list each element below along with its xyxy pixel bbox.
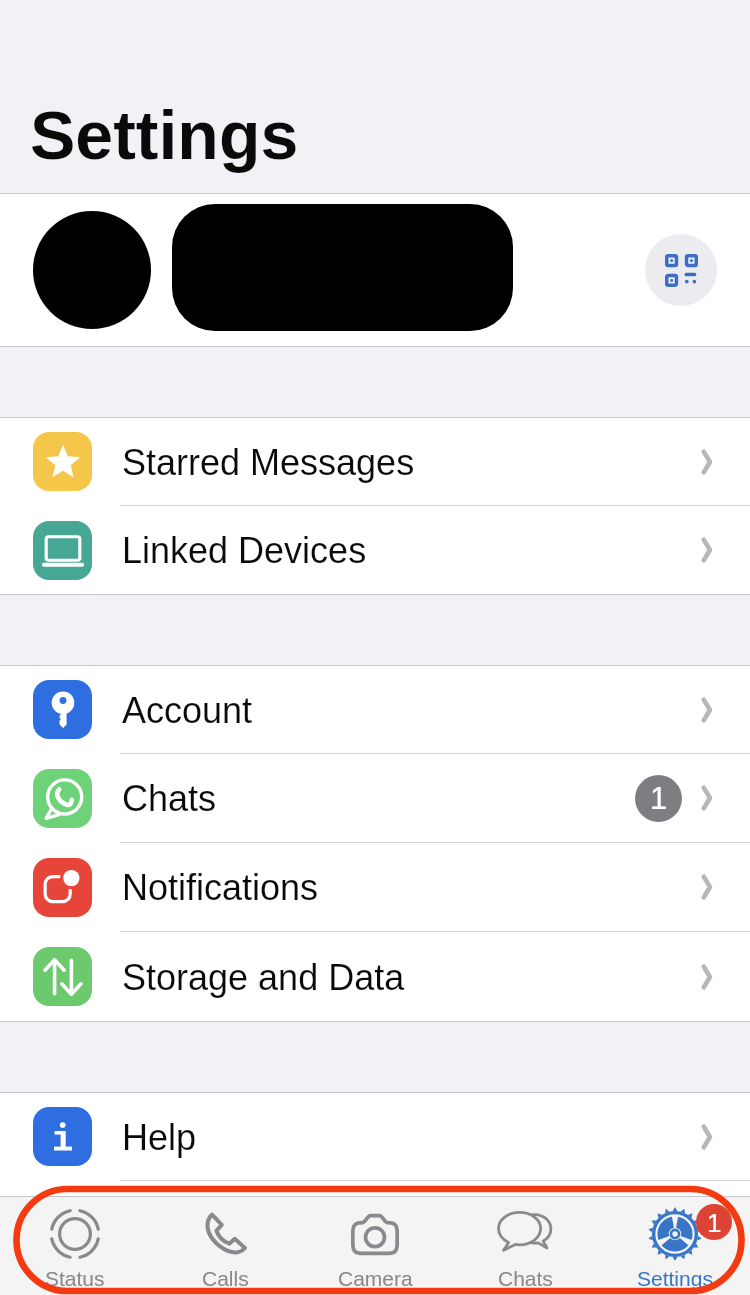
- staticText: 1: [707, 1208, 722, 1237]
- staticText: Status: [45, 1267, 105, 1290]
- staticText: Chats: [122, 778, 217, 818]
- staticText: Calls: [202, 1267, 249, 1290]
- button[interactable]: Chats: [0, 754, 750, 842]
- button[interactable]: 1: [600, 1197, 750, 1295]
- staticText: 1: [650, 781, 668, 816]
- button[interactable]: Help: [0, 1093, 750, 1180]
- staticText: Camera: [338, 1267, 413, 1290]
- staticText: Account: [122, 690, 253, 730]
- button[interactable]: Scan QR code: [645, 234, 717, 306]
- button[interactable]: Chats: [450, 1197, 600, 1295]
- staticText: Chats: [498, 1267, 553, 1290]
- staticText: Starred Messages: [122, 442, 415, 482]
- staticText: Storage and Data: [122, 957, 405, 997]
- staticText: Linked Devices: [122, 530, 367, 570]
- button[interactable]: Calls: [150, 1197, 300, 1295]
- staticText: Help: [122, 1117, 197, 1157]
- staticText: Notifications: [122, 867, 319, 907]
- button[interactable]: Linked Devices: [0, 506, 750, 594]
- button[interactable]: Storage and Data: [0, 932, 750, 1021]
- button[interactable]: Camera: [300, 1197, 450, 1295]
- button[interactable]: Status: [0, 1197, 150, 1295]
- staticText: Settings: [30, 97, 299, 173]
- staticText: Settings: [637, 1267, 713, 1290]
- button[interactable]: Notifications: [0, 843, 750, 931]
- button[interactable]: Starred Messages: [0, 418, 750, 505]
- button[interactable]: Account: [0, 666, 750, 753]
